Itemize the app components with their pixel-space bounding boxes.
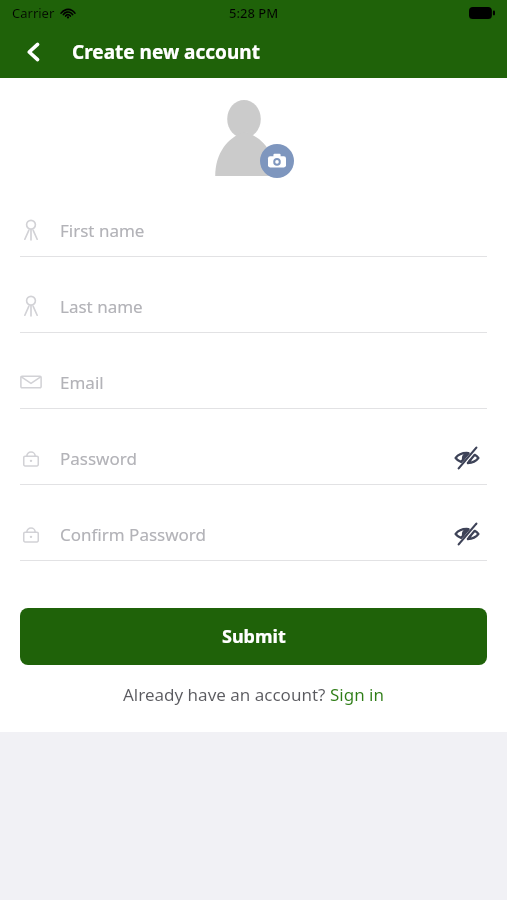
staticText: 5:28 PM (229, 4, 279, 22)
staticText: Email (60, 371, 104, 394)
staticText: Already have an account? (123, 683, 330, 706)
staticText: Create new account (72, 39, 260, 65)
staticText: First name (60, 219, 145, 242)
button[interactable]: Change profile photo (212, 100, 296, 180)
staticText: Confirm Password (60, 523, 206, 546)
button[interactable]: Back (12, 30, 56, 74)
staticText: Last name (60, 295, 143, 318)
button[interactable]: Password (20, 432, 487, 508)
button[interactable]: First name (20, 204, 487, 280)
button[interactable]: Sign in (330, 683, 384, 706)
staticText: Submit (222, 624, 286, 649)
staticText: Password (60, 447, 137, 470)
button[interactable]: Email (20, 356, 487, 432)
button[interactable]: Show password (447, 514, 487, 554)
button[interactable]: Submit (20, 608, 487, 665)
button[interactable]: Last name (20, 280, 487, 356)
button[interactable]: Show password (447, 438, 487, 478)
staticText: Sign in (330, 683, 384, 706)
button[interactable]: Confirm Password (20, 508, 487, 584)
staticText: Carrier (12, 4, 55, 22)
